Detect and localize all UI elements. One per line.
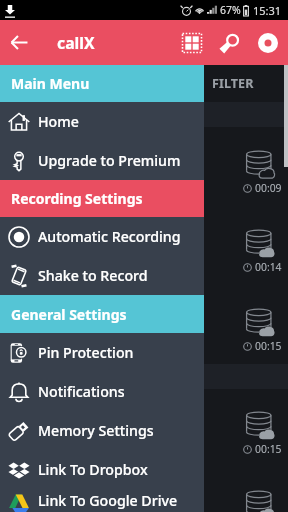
- button[interactable]: 00:15: [246, 308, 288, 353]
- staticText: Notifications: [38, 382, 125, 401]
- button[interactable]: Search: [211, 20, 249, 65]
- staticText: Recording Settings: [11, 189, 143, 208]
- staticText: General Settings: [11, 305, 127, 324]
- button[interactable]: Link To Dropbox: [0, 450, 204, 489]
- staticText: Home: [38, 112, 79, 131]
- staticText: 15:31: [253, 3, 282, 18]
- button[interactable]: Link To Google Drive: [0, 489, 204, 512]
- staticText: Automatic Recording: [38, 227, 181, 246]
- button[interactable]: Notifications: [0, 372, 204, 411]
- staticText: 00:14: [255, 260, 282, 274]
- button[interactable]: 00:15: [246, 411, 288, 456]
- button[interactable]: Back: [0, 20, 38, 65]
- staticText: Upgrade to Premium: [38, 151, 181, 170]
- staticText: Link To Dropbox: [38, 460, 148, 479]
- staticText: callX: [57, 32, 95, 54]
- staticText: Memory Settings: [38, 421, 154, 440]
- button[interactable]: Home: [0, 102, 204, 141]
- button[interactable]: Shake to Record: [0, 256, 204, 295]
- button[interactable]: Memory Settings: [0, 411, 204, 450]
- button[interactable]: Upgrade to Premium: [0, 141, 204, 180]
- staticText: 00:15: [255, 442, 282, 456]
- staticText: Link To Google Drive: [38, 491, 178, 510]
- button[interactable]: 00:14: [246, 229, 288, 274]
- staticText: Main Menu: [11, 74, 90, 93]
- button[interactable]: Automatic Recording: [0, 217, 204, 256]
- button[interactable]: [246, 490, 288, 512]
- staticText: 00:15: [255, 339, 282, 353]
- staticText: Pin Protection: [38, 343, 134, 362]
- button[interactable]: Select: [173, 20, 211, 65]
- button[interactable]: Record: [249, 20, 287, 65]
- staticText: 67%: [220, 3, 241, 17]
- staticText: Shake to Record: [38, 266, 148, 285]
- button[interactable]: Pin Protection: [0, 333, 204, 372]
- staticText: 00:09: [255, 181, 282, 195]
- staticText: FILTER: [212, 75, 254, 92]
- button[interactable]: 00:09: [246, 150, 288, 195]
